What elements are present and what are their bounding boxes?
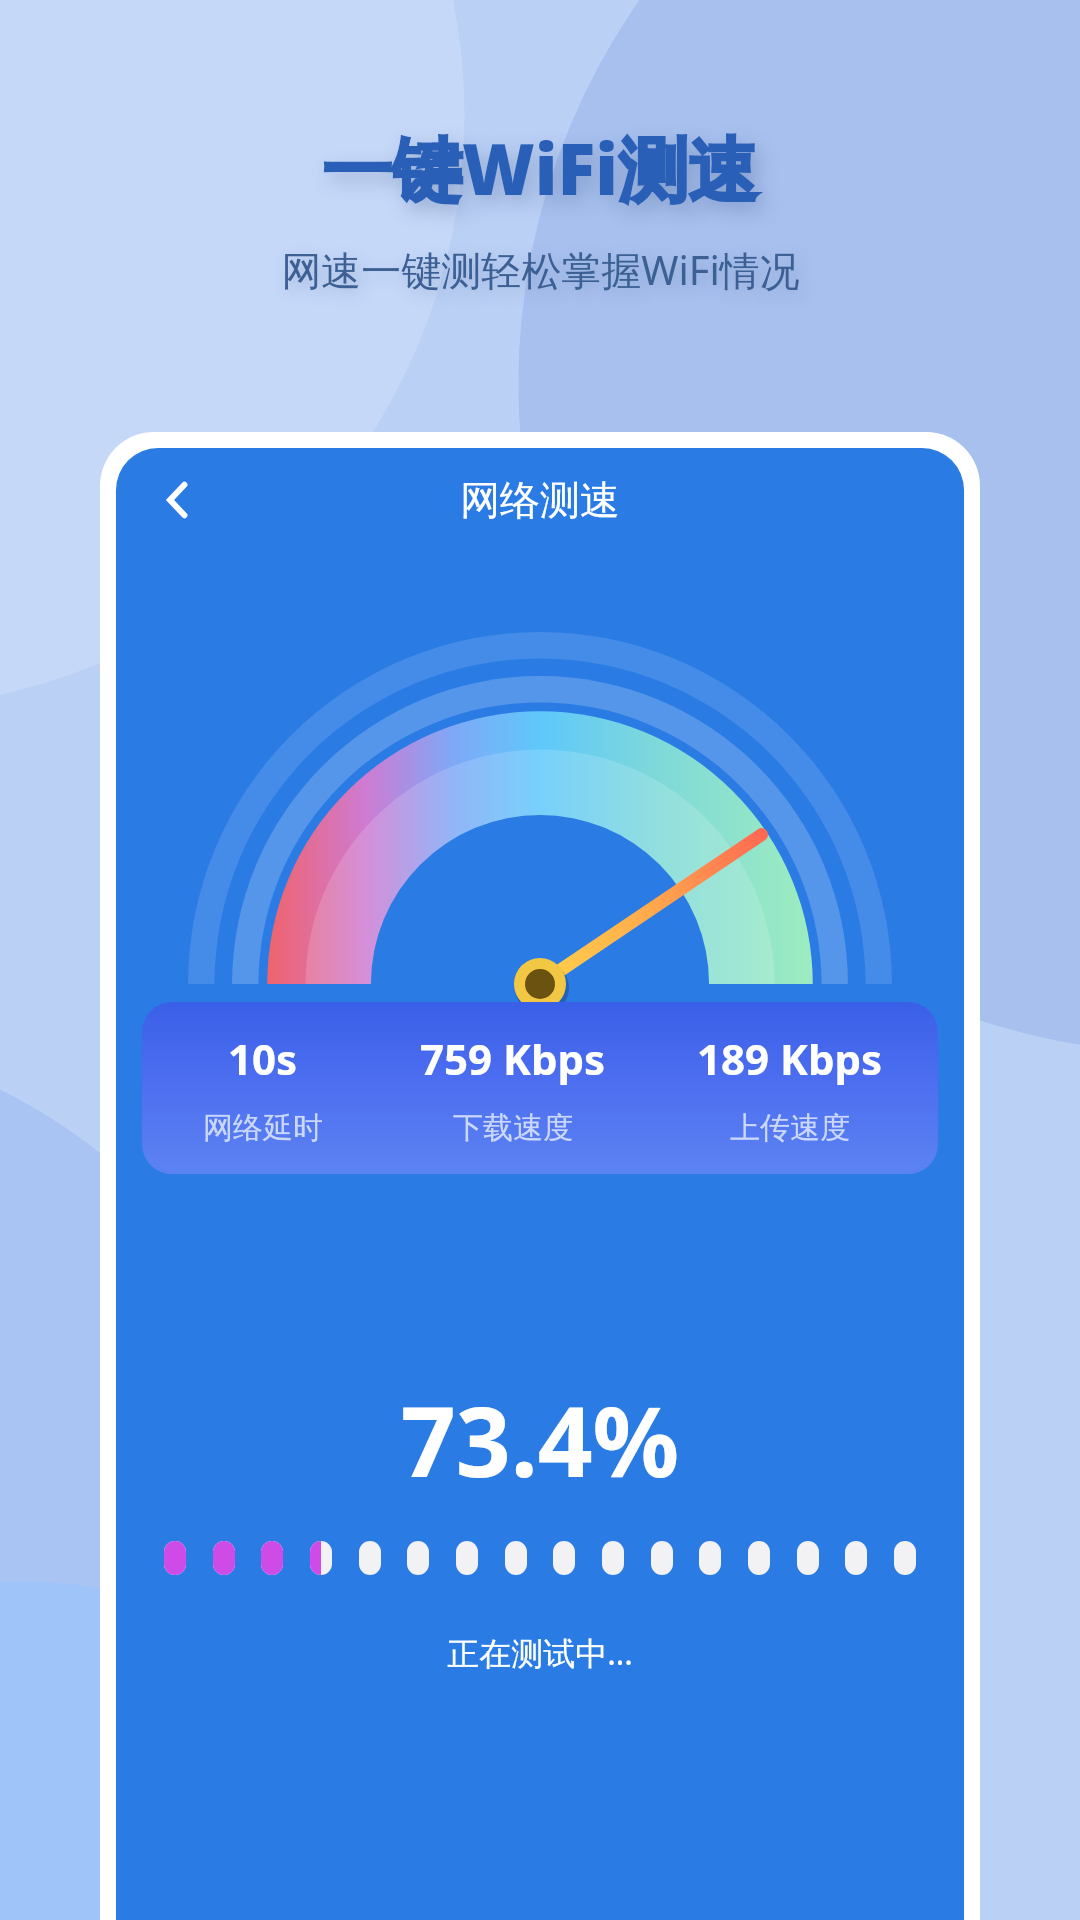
staticText: 759 Kbps [420,1030,606,1087]
staticText: 正在测试中... [116,1631,964,1675]
staticText: 189 Kbps [697,1030,883,1087]
staticText: 73.4% [116,1374,964,1505]
staticText: 一键WiFi测速 [322,120,758,216]
button[interactable]: Back [140,462,216,538]
button[interactable]: 10s [142,1002,938,1174]
staticText: 网络测速 [460,475,620,525]
staticText: 下载速度 [453,1109,573,1147]
staticText: 上传速度 [730,1109,850,1147]
staticText: 网速一键测轻松掌握WiFi情况 [281,242,800,297]
staticText: 10s [228,1030,298,1087]
staticText: 网络延时 [203,1109,323,1147]
